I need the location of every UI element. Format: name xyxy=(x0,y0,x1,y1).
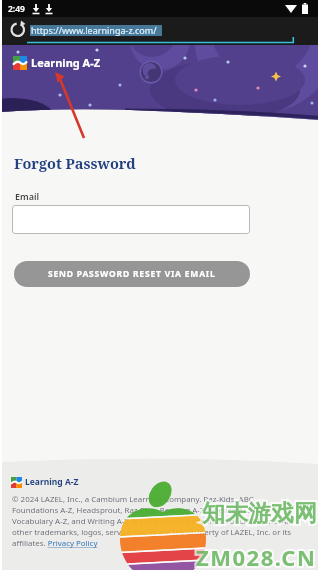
staticText: SEND PASSWORD RESET VIA EMAIL xyxy=(48,268,216,280)
staticText: 知末游戏网 xyxy=(202,499,317,528)
button[interactable] xyxy=(0,17,320,45)
button[interactable]: affiliates. Privacy Policy xyxy=(12,538,98,549)
button[interactable]: Learning A-Z xyxy=(13,55,101,70)
staticText: © 2024 LAZEL, Inc., a Cambium Learning C… xyxy=(12,494,254,505)
staticText: 2:49 xyxy=(8,3,25,15)
button[interactable] xyxy=(12,205,250,234)
staticText: Foundations A-Z, Headsprout, Raz-Plus, R… xyxy=(12,505,255,516)
button[interactable]: SEND PASSWORD RESET VIA EMAIL xyxy=(14,261,250,287)
staticText: 知末游戏网 xyxy=(202,499,317,528)
staticText: Learning A-Z xyxy=(25,476,79,488)
staticText: https://www.learninga-z.com/ xyxy=(31,24,157,36)
staticText: ZM028.CN xyxy=(196,542,317,570)
staticText: ZM028.CN xyxy=(196,542,317,570)
staticText: Email xyxy=(15,190,40,202)
staticText: Forgot Password xyxy=(14,153,136,173)
button[interactable]: Learning A-Z xyxy=(11,476,79,488)
staticText: Vocabulary A-Z, and Writing A-Z are regi… xyxy=(12,516,291,527)
staticText: other trademarks, logos, service marks a… xyxy=(12,527,292,538)
staticText: Learning A-Z xyxy=(31,55,101,70)
